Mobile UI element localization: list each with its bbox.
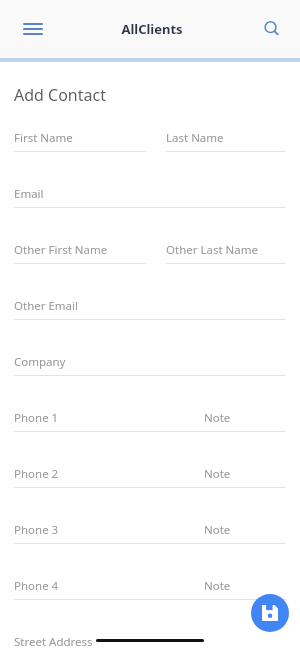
staticText: AllClients [121, 20, 183, 38]
button[interactable]: First Name [14, 130, 146, 152]
button[interactable]: Phone 3 [14, 522, 286, 544]
staticText: Phone 2 [14, 466, 59, 482]
staticText: Phone 1 [14, 410, 59, 426]
staticText: Note [204, 410, 231, 426]
button[interactable]: Email [14, 186, 286, 208]
staticText: Last Name [166, 130, 224, 146]
button[interactable]: Search [252, 9, 292, 49]
staticText: Street Address [14, 634, 93, 649]
staticText: Phone 3 [14, 522, 59, 538]
button[interactable]: Other First Name [14, 242, 146, 264]
staticText: Other Email [14, 298, 78, 314]
staticText: Add Contact [14, 84, 106, 106]
staticText: Company [14, 354, 66, 370]
button[interactable]: Other Last Name [166, 242, 286, 264]
staticText: Email [14, 186, 44, 202]
button[interactable]: Save contact [251, 594, 289, 632]
staticText: Other Last Name [166, 242, 259, 258]
button[interactable]: Street Address [14, 634, 286, 649]
staticText: First Name [14, 130, 73, 146]
button[interactable]: Phone 2 [14, 466, 286, 488]
staticText: Note [204, 578, 231, 594]
staticText: Other First Name [14, 242, 108, 258]
button[interactable]: Open navigation menu [12, 8, 54, 50]
button[interactable]: Last Name [166, 130, 286, 152]
button[interactable]: Other Email [14, 298, 286, 320]
staticText: Note [204, 522, 231, 538]
button[interactable]: Phone 4 [14, 578, 286, 600]
button[interactable]: Company [14, 354, 286, 376]
staticText: Note [204, 466, 231, 482]
staticText: Phone 4 [14, 578, 59, 594]
button[interactable]: Phone 1 [14, 410, 286, 432]
